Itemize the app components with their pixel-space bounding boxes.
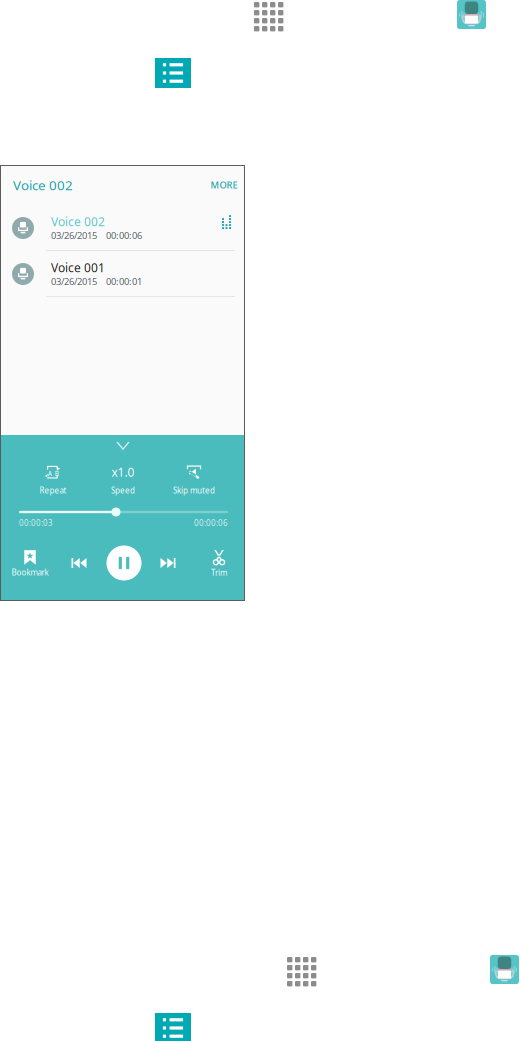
staticText: x1.0	[111, 464, 134, 480]
staticText: Voice 002	[13, 176, 73, 194]
staticText: B	[55, 469, 59, 478]
staticText: 00:00:01	[106, 275, 142, 288]
staticText: 00:00:06	[194, 518, 228, 528]
button[interactable]: Recording list	[155, 58, 191, 88]
staticText: Voice 002	[51, 213, 105, 229]
button[interactable]: Bookmark	[5, 546, 55, 582]
staticText: 00:00:06	[106, 229, 142, 242]
button[interactable]: MORE	[204, 176, 244, 194]
staticText: MORE	[210, 179, 237, 191]
button[interactable]: Voice 001	[1, 251, 244, 297]
staticText: Bookmark	[11, 567, 48, 578]
button[interactable]: Fast forward	[151, 548, 185, 578]
button[interactable]: Voice Recorder	[457, 0, 486, 29]
staticText: 00:00:03	[19, 518, 53, 528]
staticText: Skip muted	[173, 485, 215, 496]
button[interactable]: Apps	[287, 957, 316, 986]
staticText: Voice 001	[51, 259, 105, 275]
button[interactable]: Collapse player	[97, 436, 149, 456]
staticText: Trim	[211, 567, 227, 578]
button[interactable]: Rewind	[62, 548, 96, 578]
staticText: Repeat	[39, 485, 66, 496]
button[interactable]: A	[24, 462, 82, 498]
button[interactable]: Voice Recorder	[490, 955, 519, 984]
staticText: 03/26/2015	[51, 229, 97, 242]
button[interactable]: Trim	[194, 546, 244, 582]
button[interactable]: Apps	[254, 2, 283, 31]
button[interactable]: Voice 002	[1, 205, 244, 251]
button[interactable]: Recording list	[155, 1013, 191, 1041]
button[interactable]: Skip muted	[165, 462, 223, 498]
button[interactable]: x1.0	[94, 462, 152, 498]
staticText: 03/26/2015	[51, 275, 97, 288]
staticText: A	[48, 469, 52, 478]
staticText: Speed	[111, 485, 135, 496]
button[interactable]: Pause	[105, 544, 143, 582]
